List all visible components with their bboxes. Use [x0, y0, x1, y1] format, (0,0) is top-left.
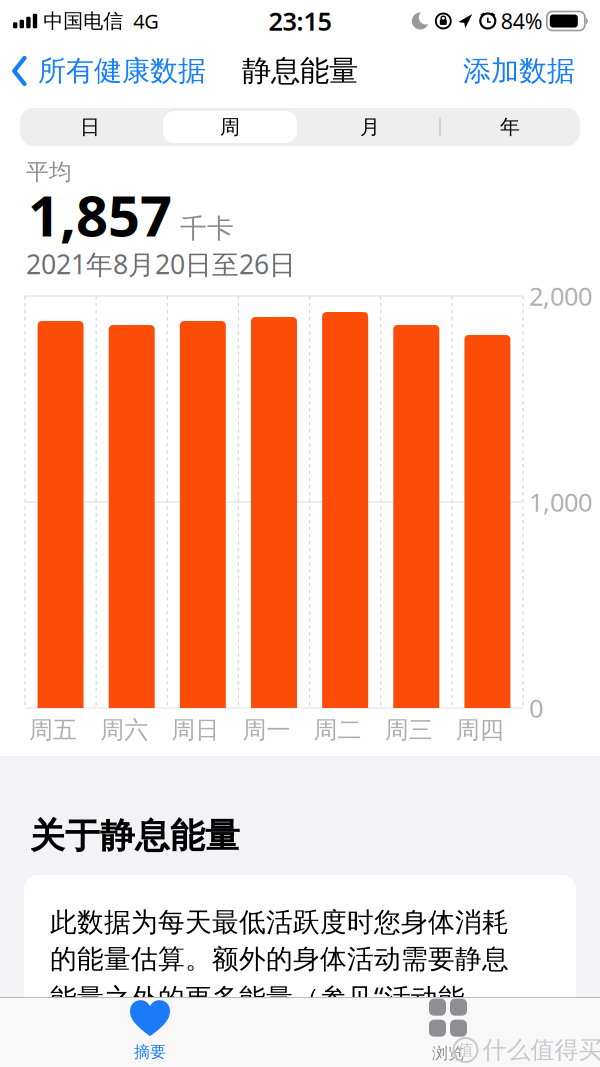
staticText: 0 [529, 691, 543, 725]
staticText: 月 [360, 115, 380, 139]
staticText: 周六 [100, 715, 148, 745]
staticText: 摘要 [134, 1042, 166, 1062]
staticText: 1,857 [28, 178, 172, 252]
staticText: 4G [133, 8, 159, 34]
button[interactable]: 周 [160, 108, 300, 146]
staticText: 周二 [314, 715, 362, 745]
button[interactable]: 浏览 [388, 999, 508, 1063]
staticText: 2021年8月20日至26日 [26, 246, 296, 282]
staticText: 年 [500, 115, 520, 139]
staticText: 什么值得买 [482, 1035, 600, 1065]
staticText: 周五 [29, 715, 77, 745]
staticText: 千卡 [180, 212, 234, 245]
staticText: 周一 [242, 715, 290, 745]
staticText: 中国电信 [43, 9, 123, 33]
button[interactable]: 日 [20, 108, 160, 146]
button[interactable]: 所有健康数据 [0, 54, 206, 88]
staticText: 1,000 [529, 485, 592, 519]
staticText: 周日 [171, 715, 219, 745]
button[interactable]: 年 [440, 108, 580, 146]
staticText: 周四 [456, 715, 504, 745]
button[interactable]: 添加数据 [463, 54, 600, 88]
staticText: 此数据为每天最低活跃度时您身体消耗的能量估算。额外的身体活动需要静息能量之外的更… [50, 906, 509, 1015]
staticText: 23:15 [268, 4, 331, 38]
staticText: 日 [80, 115, 100, 139]
staticText: 2,000 [529, 279, 592, 313]
staticText: 所有健康数据 [38, 54, 206, 88]
staticText: 关于静息能量 [30, 815, 240, 857]
staticText: 84% [501, 7, 543, 35]
staticText: 浏览 [432, 1044, 464, 1063]
staticText: 周三 [385, 715, 433, 745]
staticText: 周 [220, 115, 240, 139]
staticText: 值 [457, 1040, 473, 1060]
staticText: 静息能量 [242, 53, 358, 89]
button[interactable]: 摘要 [90, 999, 210, 1063]
button[interactable]: 月 [300, 108, 440, 146]
staticText: 平均 [26, 158, 72, 186]
staticText: 添加数据 [463, 54, 575, 88]
